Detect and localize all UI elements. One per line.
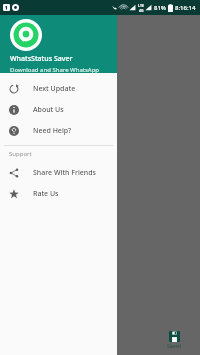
staticText: About Us xyxy=(33,105,64,115)
button[interactable]: Share With Friends xyxy=(0,162,117,183)
staticText: Download and Share WhatsApp Status xyxy=(10,66,117,73)
button[interactable]: Next Update xyxy=(0,78,117,99)
staticText: 4G xyxy=(139,8,144,13)
staticText: Saved xyxy=(167,343,182,350)
button[interactable]: Saved xyxy=(163,329,186,352)
button[interactable]: Need Help? xyxy=(0,120,117,141)
staticText: Rate Us xyxy=(33,189,59,199)
staticText: LTE xyxy=(138,3,144,8)
other: Saved xyxy=(169,331,180,342)
button[interactable]: Rate Us xyxy=(0,183,117,204)
button[interactable]: About Us xyxy=(0,99,117,120)
staticText: Next Update xyxy=(33,84,76,94)
staticText: 8:16:14 xyxy=(175,4,196,12)
staticText: Share With Friends xyxy=(33,168,96,178)
staticText: Support xyxy=(9,150,32,158)
staticText: WhatsStatus Saver xyxy=(10,54,73,64)
staticText: 81% xyxy=(154,4,166,12)
staticText: Need Help? xyxy=(33,126,72,136)
